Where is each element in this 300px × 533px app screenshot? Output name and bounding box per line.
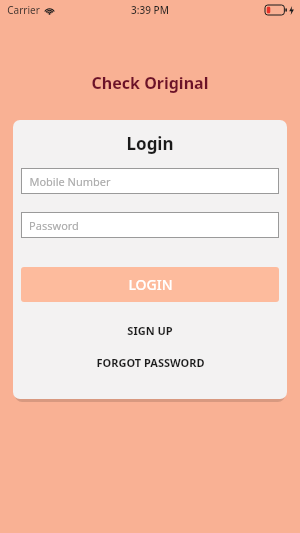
button[interactable]: Mobile Number	[21, 168, 279, 194]
staticText: FORGOT PASSWORD	[96, 355, 205, 370]
staticText: Check Original	[0, 72, 300, 94]
staticText: SIGN UP	[127, 323, 173, 338]
staticText: 3:39 PM	[131, 3, 169, 17]
staticText: Carrier	[7, 3, 40, 17]
button[interactable]: SIGN UP	[13, 318, 287, 342]
staticText: Password	[29, 218, 79, 233]
staticText: Mobile Number	[29, 174, 111, 189]
button[interactable]: Password	[21, 212, 279, 238]
staticText: LOGIN	[128, 275, 173, 294]
staticText: Login	[13, 132, 287, 155]
button[interactable]: LOGIN	[21, 267, 279, 302]
button[interactable]: FORGOT PASSWORD	[13, 350, 287, 374]
